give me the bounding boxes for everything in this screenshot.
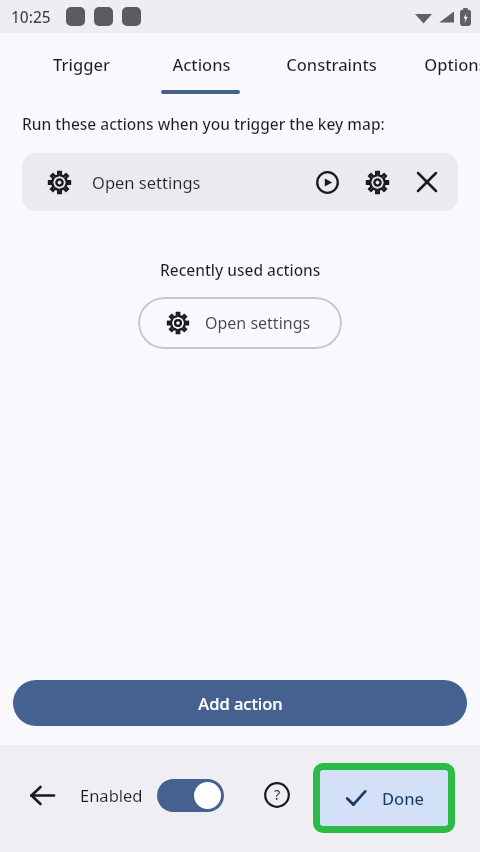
button[interactable]: Add action [13, 680, 467, 726]
button[interactable]: Trigger [19, 33, 143, 95]
button[interactable]: Open settings [138, 297, 342, 349]
button[interactable]: Test action [306, 161, 348, 203]
button[interactable]: Remove action [406, 161, 448, 203]
staticText: Recently used actions [160, 259, 321, 280]
button[interactable]: Enabled [80, 771, 224, 819]
staticText: Add action [198, 692, 283, 714]
button[interactable]: Options [393, 33, 480, 95]
button[interactable]: Actions [139, 33, 263, 95]
staticText: 10:25 [11, 6, 51, 27]
staticText: Actions [172, 53, 231, 75]
staticText: Constraints [286, 53, 377, 75]
button[interactable]: Done [313, 763, 455, 833]
button[interactable]: Open settings [22, 153, 458, 211]
button[interactable]: Back [18, 771, 66, 819]
staticText: Open settings [205, 312, 311, 334]
button[interactable]: Action settings [356, 161, 398, 203]
staticText: Enabled [80, 784, 143, 806]
staticText: ? [274, 785, 281, 804]
staticText: Open settings [92, 171, 201, 193]
button[interactable]: Help [254, 772, 300, 818]
staticText: Done [382, 787, 424, 809]
staticText: Trigger [53, 53, 110, 75]
button[interactable]: Constraints [269, 33, 393, 95]
staticText: Options [424, 53, 480, 75]
staticText: Run these actions when you trigger the k… [22, 113, 385, 134]
